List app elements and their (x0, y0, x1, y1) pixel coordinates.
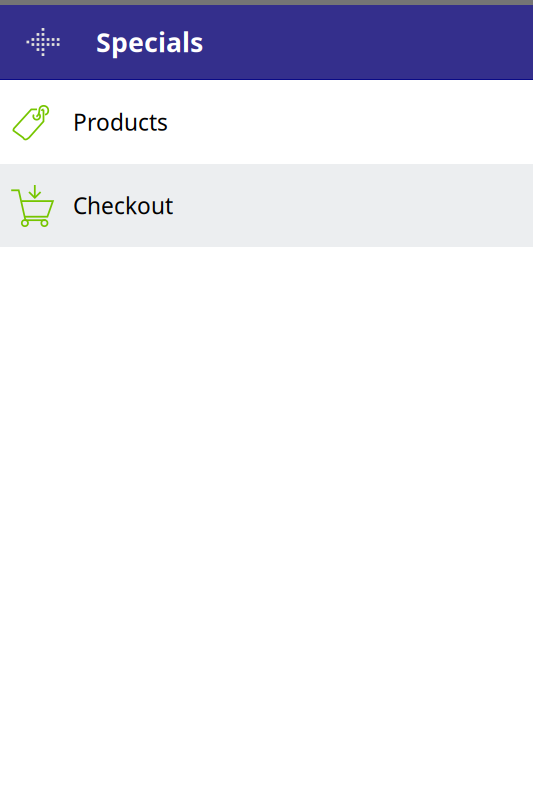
button[interactable]: Products (0, 80, 533, 164)
button[interactable]: Menu (0, 5, 86, 79)
staticText: Checkout (73, 190, 173, 220)
staticText: Products (73, 107, 168, 137)
button[interactable]: Checkout (0, 164, 533, 247)
staticText: Specials (96, 24, 203, 60)
